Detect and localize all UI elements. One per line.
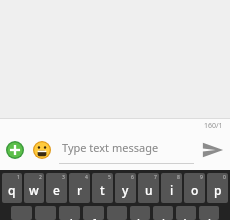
staticText: 7 bbox=[154, 174, 157, 181]
button[interactable]: a bbox=[11, 206, 32, 220]
staticText: p bbox=[214, 182, 222, 198]
staticText: 2 bbox=[39, 174, 42, 181]
staticText: 0 bbox=[223, 174, 226, 181]
staticText: 6 bbox=[131, 174, 134, 181]
button[interactable]: 9 bbox=[184, 173, 205, 203]
button[interactable]: f bbox=[83, 206, 104, 220]
staticText: 160/1 bbox=[204, 121, 223, 131]
button[interactable]: g bbox=[107, 206, 127, 220]
button[interactable]: Attach bbox=[3, 138, 27, 162]
button[interactable]: d bbox=[59, 206, 80, 220]
button[interactable]: h bbox=[130, 206, 150, 220]
button[interactable]: 4 bbox=[69, 173, 90, 203]
staticText: h bbox=[137, 215, 144, 220]
button[interactable]: 8 bbox=[161, 173, 182, 203]
button[interactable]: 2 bbox=[24, 173, 44, 203]
button[interactable]: Type text message bbox=[59, 130, 194, 170]
staticText: i bbox=[170, 182, 174, 198]
button[interactable]: 6 bbox=[115, 173, 136, 203]
staticText: j bbox=[162, 215, 165, 220]
button[interactable]: l bbox=[199, 206, 219, 220]
button[interactable]: k bbox=[176, 206, 196, 220]
staticText: q bbox=[8, 182, 16, 198]
staticText: e bbox=[53, 182, 60, 198]
button[interactable]: j bbox=[153, 206, 173, 220]
button[interactable]: 5 bbox=[92, 173, 113, 203]
staticText: 5 bbox=[108, 174, 111, 181]
staticText: 4 bbox=[85, 174, 88, 181]
staticText: d bbox=[66, 215, 73, 220]
button[interactable]: Send bbox=[198, 135, 228, 165]
staticText: 9 bbox=[200, 174, 203, 181]
staticText: w bbox=[29, 182, 39, 198]
button[interactable]: 1 bbox=[2, 173, 22, 203]
staticText: y bbox=[122, 182, 129, 198]
staticText: u bbox=[145, 182, 153, 198]
staticText: r bbox=[77, 182, 83, 198]
staticText: l bbox=[208, 215, 211, 220]
button[interactable]: 7 bbox=[138, 173, 159, 203]
staticText: f bbox=[92, 215, 96, 220]
staticText: k bbox=[183, 215, 190, 220]
staticText: 3 bbox=[62, 174, 65, 181]
staticText: 8 bbox=[177, 174, 180, 181]
staticText: 1 bbox=[17, 174, 20, 181]
button[interactable]: s bbox=[35, 206, 56, 220]
staticText: o bbox=[191, 182, 199, 198]
button[interactable]: 0 bbox=[207, 173, 228, 203]
staticText: t bbox=[100, 182, 105, 198]
staticText: Type text message bbox=[62, 140, 159, 155]
button[interactable]: Insert emoji bbox=[30, 138, 54, 162]
button[interactable]: 3 bbox=[46, 173, 67, 203]
